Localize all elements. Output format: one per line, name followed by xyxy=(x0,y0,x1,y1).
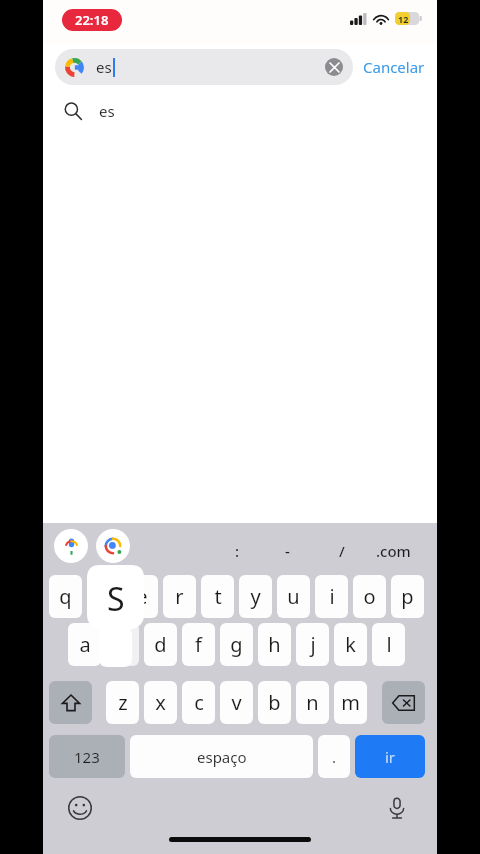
staticText: es xyxy=(96,57,112,77)
button[interactable]: d xyxy=(144,623,177,666)
button[interactable]: p xyxy=(391,575,424,618)
button[interactable]: l xyxy=(372,623,405,666)
staticText: i xyxy=(329,583,335,610)
button[interactable]: n xyxy=(296,681,329,724)
staticText: : xyxy=(235,541,240,561)
button[interactable]: j xyxy=(296,623,329,666)
button[interactable]: r xyxy=(163,575,196,618)
button[interactable]: z xyxy=(106,681,139,724)
staticText: e xyxy=(136,583,148,610)
staticText: y xyxy=(250,583,261,610)
staticText: / xyxy=(339,541,345,561)
button[interactable]: ir xyxy=(355,735,425,778)
staticText: a xyxy=(79,631,91,658)
button[interactable]: Backspace xyxy=(382,681,425,724)
staticText: - xyxy=(285,541,290,561)
staticText: q xyxy=(59,583,72,610)
staticText: es xyxy=(99,101,115,121)
button[interactable]: Clear text xyxy=(325,58,343,76)
staticText: z xyxy=(118,689,128,716)
button[interactable]: b xyxy=(258,681,291,724)
button[interactable] xyxy=(106,623,139,666)
staticText: 12 xyxy=(398,13,409,25)
button[interactable]: . xyxy=(318,735,350,778)
staticText: espaço xyxy=(197,747,247,767)
staticText: l xyxy=(386,631,392,658)
button[interactable]: f xyxy=(182,623,215,666)
staticText: h xyxy=(268,631,281,658)
button[interactable]: q xyxy=(49,575,82,618)
button[interactable]: : xyxy=(229,535,246,567)
button[interactable]: c xyxy=(182,681,215,724)
staticText: . xyxy=(332,747,337,767)
staticText: c xyxy=(194,689,204,716)
button[interactable]: x xyxy=(144,681,177,724)
button[interactable]: h xyxy=(258,623,291,666)
button[interactable]: v xyxy=(220,681,253,724)
button[interactable]: o xyxy=(353,575,386,618)
button[interactable]: Shift xyxy=(49,681,92,724)
button[interactable]: i xyxy=(315,575,348,618)
button[interactable] xyxy=(87,575,120,618)
staticText: f xyxy=(195,631,202,658)
button[interactable]: Dictation xyxy=(380,791,414,825)
staticText: d xyxy=(154,631,167,658)
button[interactable]: es xyxy=(55,49,353,85)
staticText: n xyxy=(306,689,319,716)
staticText: Cancelar xyxy=(363,57,425,77)
button[interactable]: espaço xyxy=(130,735,313,778)
button[interactable]: - xyxy=(279,535,296,567)
button[interactable]: g xyxy=(220,623,253,666)
staticText: k xyxy=(345,631,356,658)
button[interactable]: k xyxy=(334,623,367,666)
button[interactable]: e xyxy=(125,575,158,618)
staticText: u xyxy=(287,583,300,610)
button[interactable]: .com xyxy=(370,535,417,567)
button[interactable]: / xyxy=(333,535,351,567)
staticText: 22:18 xyxy=(75,11,109,29)
button[interactable]: y xyxy=(239,575,272,618)
button[interactable]: Cancelar xyxy=(353,51,435,83)
staticText: 123 xyxy=(74,747,100,767)
button[interactable]: m xyxy=(334,681,367,724)
button[interactable]: Emoji xyxy=(63,791,97,825)
staticText: b xyxy=(268,689,281,716)
button[interactable]: u xyxy=(277,575,310,618)
button[interactable]: 123 xyxy=(49,735,125,778)
staticText: g xyxy=(230,631,243,658)
staticText: v xyxy=(231,689,242,716)
button[interactable]: Voice search xyxy=(54,529,88,563)
staticText: t xyxy=(214,583,222,610)
staticText: p xyxy=(401,583,414,610)
staticText: S xyxy=(107,577,125,621)
staticText: r xyxy=(175,583,184,610)
button[interactable]: a xyxy=(68,623,101,666)
button[interactable]: Google Lens xyxy=(96,529,130,563)
staticText: j xyxy=(310,631,316,658)
staticText: o xyxy=(363,583,376,610)
staticText: m xyxy=(341,689,360,716)
button[interactable]: es xyxy=(43,90,437,132)
staticText: x xyxy=(155,689,166,716)
button[interactable]: t xyxy=(201,575,234,618)
staticText: .com xyxy=(376,541,411,561)
staticText: ir xyxy=(385,747,396,767)
